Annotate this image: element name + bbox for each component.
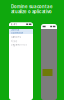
staticText: Cartões (11, 35, 21, 39)
button[interactable]: Cartões (9, 34, 33, 40)
button[interactable]: Pix e pagamentos (9, 40, 33, 46)
staticText: Pix e pagamentos (11, 40, 27, 46)
staticText: Domine sua conta e atualize o aplicativo (11, 4, 53, 14)
staticText: Conta corrente (11, 28, 24, 35)
button[interactable]: Conta corrente (9, 29, 33, 34)
staticText: 9:41 (11, 23, 17, 26)
